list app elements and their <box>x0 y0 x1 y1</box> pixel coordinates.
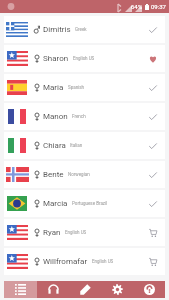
button[interactable]: Ryan <box>4 219 165 246</box>
button[interactable]: Learned <box>140 74 165 101</box>
button[interactable]: Dimitris <box>4 16 165 43</box>
button[interactable]: Learned <box>140 16 165 43</box>
staticText: Portuguese Brazil <box>72 201 108 206</box>
staticText: 09:37 <box>151 3 166 10</box>
staticText: Ryan <box>43 228 61 237</box>
staticText: English US <box>65 230 87 235</box>
button[interactable]: Learned <box>140 132 165 159</box>
button[interactable]: Settings <box>101 281 133 298</box>
staticText: French <box>72 114 86 119</box>
staticText: Greek <box>75 27 87 32</box>
button[interactable]: Chiara <box>4 132 165 159</box>
staticText: English US <box>92 259 114 264</box>
button[interactable]: Word list <box>4 281 37 298</box>
button[interactable]: Bente <box>4 161 165 188</box>
button[interactable]: Marcia <box>4 190 165 217</box>
staticText: Dimitris <box>43 25 71 34</box>
button[interactable]: Buy voice <box>140 219 165 246</box>
button[interactable]: Buy voice <box>140 248 165 275</box>
button[interactable]: Listen <box>37 281 69 298</box>
button[interactable]: Learned <box>140 103 165 130</box>
staticText: Norwegian <box>68 172 90 177</box>
button[interactable]: Write <box>69 281 101 298</box>
button[interactable]: Help <box>133 281 165 298</box>
staticText: Chiara <box>43 141 66 150</box>
staticText: Manon <box>43 112 68 121</box>
staticText: Marcia <box>43 199 68 208</box>
staticText: Willfromafar <box>43 257 88 266</box>
button[interactable]: Learned <box>140 190 165 217</box>
staticText: 64% <box>131 3 143 10</box>
staticText: Spanish <box>68 85 85 90</box>
staticText: Italian <box>70 143 83 148</box>
staticText: English US <box>73 56 95 61</box>
button[interactable]: Sharon <box>4 45 165 72</box>
button[interactable]: Maria <box>4 74 165 101</box>
staticText: Bente <box>43 170 64 179</box>
staticText: Maria <box>43 83 64 92</box>
button[interactable]: Favourite <box>140 45 165 72</box>
button[interactable]: Willfromafar <box>4 248 165 275</box>
button[interactable]: Manon <box>4 103 165 130</box>
staticText: Sharon <box>43 54 69 63</box>
button[interactable]: Learned <box>140 161 165 188</box>
